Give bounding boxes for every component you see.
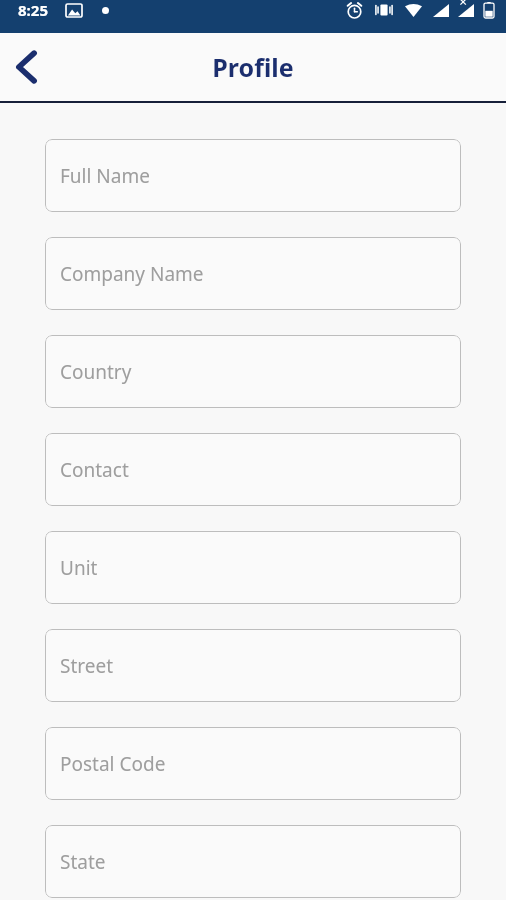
staticText: Street (60, 653, 114, 679)
button[interactable]: Full Name (45, 139, 461, 212)
staticText: State (60, 849, 106, 875)
staticText: Contact (60, 457, 129, 483)
button[interactable]: Street (45, 629, 461, 702)
staticText: Unit (60, 555, 98, 581)
staticText: 8:25 (18, 0, 48, 20)
button[interactable]: Country (45, 335, 461, 408)
staticText: Company Name (60, 261, 204, 287)
staticText: Postal Code (60, 751, 166, 777)
button[interactable]: Contact (45, 433, 461, 506)
button[interactable]: Postal Code (45, 727, 461, 800)
button[interactable]: Unit (45, 531, 461, 604)
staticText: Profile (212, 50, 294, 84)
button[interactable]: Company Name (45, 237, 461, 310)
button[interactable]: State (45, 825, 461, 898)
staticText: Country (60, 359, 132, 385)
staticText: Full Name (60, 163, 150, 189)
button[interactable]: Back (2, 43, 50, 91)
